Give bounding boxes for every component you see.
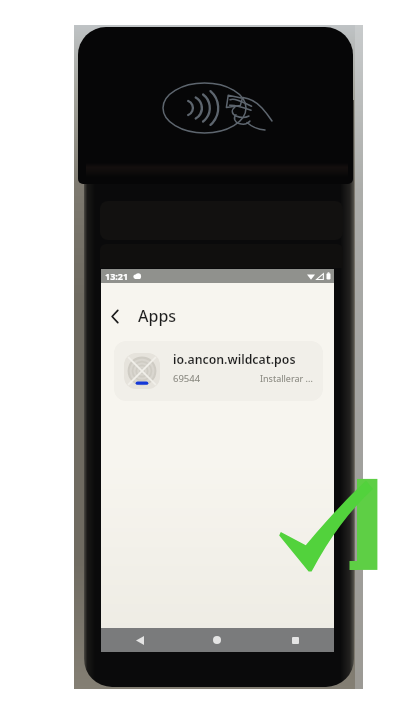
staticText: io.ancon.wildcat.pos xyxy=(173,351,296,368)
staticText: Installerar ... xyxy=(260,372,313,384)
button[interactable]: io.ancon.wildcat.pos xyxy=(114,341,323,401)
button[interactable]: Recent apps xyxy=(256,628,334,652)
button[interactable]: Back xyxy=(105,306,125,326)
button[interactable]: Home xyxy=(178,628,256,652)
button[interactable]: Back xyxy=(101,628,178,652)
staticText: Apps xyxy=(138,305,177,327)
staticText: 69544 xyxy=(173,372,201,385)
staticText: 13:21 xyxy=(105,270,129,282)
